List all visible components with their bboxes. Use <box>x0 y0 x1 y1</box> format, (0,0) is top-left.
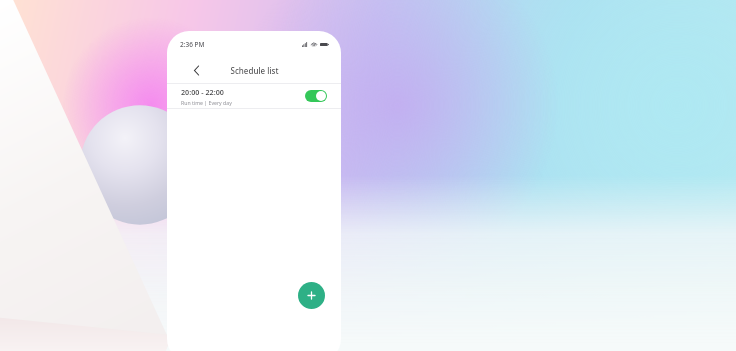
staticText: Schedule list <box>230 65 279 76</box>
staticText: 20:00 - 22:00 <box>181 87 224 97</box>
staticText: Run time | Every day <box>181 99 232 106</box>
button[interactable]: 20:00 - 22:00 <box>167 84 341 108</box>
staticText: 2:36 PM <box>180 40 205 49</box>
button[interactable]: Add schedule <box>298 282 325 309</box>
button[interactable]: Back <box>189 63 203 77</box>
button[interactable]: Schedule enabled <box>305 90 327 102</box>
